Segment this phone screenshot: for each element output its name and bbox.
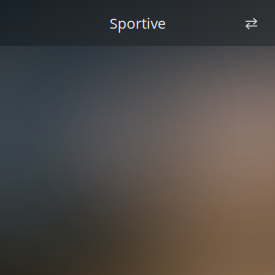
staticText: Sportive <box>109 13 165 33</box>
button[interactable]: Switch workout <box>232 4 270 42</box>
